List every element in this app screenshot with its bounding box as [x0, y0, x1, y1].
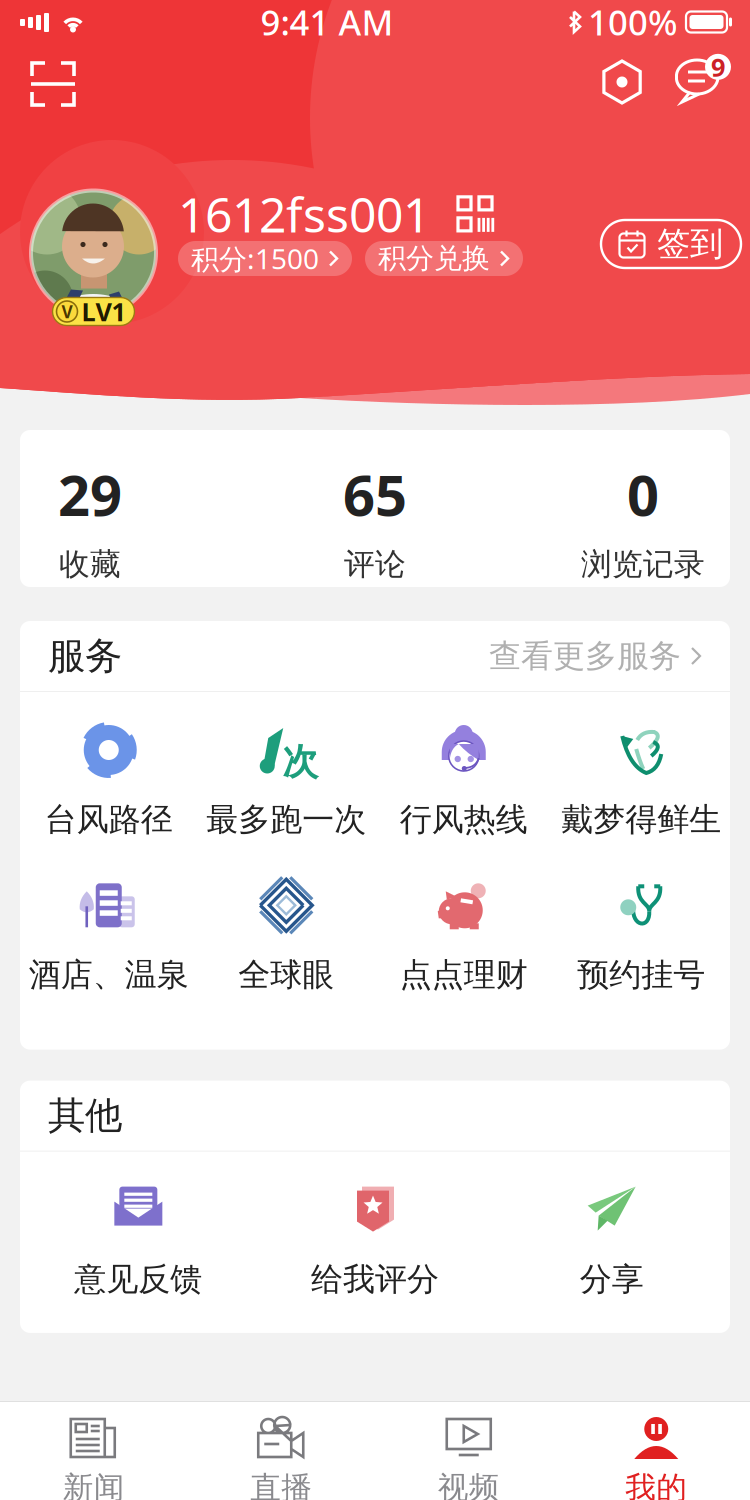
button[interactable]: 新闻: [0, 1415, 187, 1500]
staticText: 台风路径: [45, 800, 173, 839]
staticText: 酒店、温泉: [29, 955, 189, 995]
button[interactable]: 65: [305, 457, 445, 583]
staticText: 直播: [250, 1469, 312, 1500]
staticText: 预约挂号: [577, 955, 705, 995]
staticText: 签到: [657, 223, 723, 264]
button[interactable]: Scan: [22, 53, 84, 115]
button[interactable]: 查看更多服务: [489, 630, 702, 682]
button[interactable]: 酒店、温泉: [20, 873, 197, 995]
button[interactable]: Settings: [592, 52, 652, 112]
staticText: 积分兑换: [378, 241, 490, 276]
button[interactable]: 分享: [493, 1178, 730, 1299]
staticText: 9: [711, 50, 725, 84]
staticText: 全球眼: [238, 955, 334, 995]
button[interactable]: 全球眼: [197, 873, 375, 995]
button[interactable]: 29: [20, 457, 160, 583]
staticText: 最多跑一次: [206, 800, 366, 839]
staticText: 评论: [344, 545, 406, 583]
button[interactable]: My QR code: [456, 195, 494, 233]
button[interactable]: 给我评分: [257, 1178, 493, 1299]
button[interactable]: 0: [573, 457, 713, 583]
button[interactable]: Profile photo: [28, 180, 159, 326]
button[interactable]: 签到: [601, 220, 741, 268]
staticText: 29: [58, 457, 122, 531]
button[interactable]: 预约挂号: [552, 873, 730, 995]
staticText: 收藏: [59, 545, 121, 583]
staticText: 点点理财: [400, 955, 528, 995]
staticText: 65: [343, 457, 407, 531]
staticText: LV1: [81, 295, 125, 328]
button[interactable]: 我的: [562, 1415, 750, 1500]
staticText: 给我评分: [311, 1260, 439, 1299]
staticText: 9:41 AM: [260, 0, 393, 45]
staticText: 0: [627, 457, 659, 531]
button[interactable]: 积分兑换: [365, 241, 523, 276]
staticText: V: [61, 300, 72, 323]
button[interactable]: 积分:1500: [178, 241, 352, 276]
staticText: 行风热线: [400, 800, 528, 839]
staticText: 意见反馈: [74, 1260, 202, 1299]
staticText: 戴梦得鲜生: [561, 800, 721, 839]
button[interactable]: 意见反馈: [20, 1178, 257, 1299]
staticText: 我的: [625, 1469, 687, 1500]
button[interactable]: 次: [197, 718, 375, 839]
button[interactable]: 点点理财: [375, 873, 552, 995]
staticText: 服务: [48, 633, 122, 679]
button[interactable]: 台风路径: [20, 718, 197, 839]
button[interactable]: 直播: [187, 1415, 375, 1500]
staticText: 新闻: [63, 1469, 125, 1500]
button[interactable]: 行风热线: [375, 718, 552, 839]
staticText: 查看更多服务: [489, 636, 681, 676]
staticText: 其他: [48, 1093, 122, 1139]
staticText: 1612fss001: [178, 182, 430, 246]
staticText: 次: [282, 740, 318, 784]
staticText: 100%: [588, 0, 678, 45]
staticText: 浏览记录: [581, 545, 705, 583]
staticText: 分享: [580, 1260, 644, 1299]
staticText: 视频: [438, 1469, 500, 1500]
button[interactable]: 戴梦得鲜生: [552, 718, 730, 839]
button[interactable]: 视频: [375, 1415, 562, 1500]
staticText: 积分:1500: [191, 240, 319, 277]
button[interactable]: Messages: [666, 48, 734, 110]
